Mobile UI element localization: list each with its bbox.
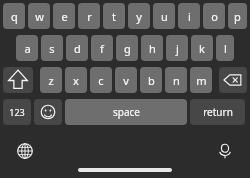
staticText: v <box>123 73 129 88</box>
staticText: d <box>74 41 81 56</box>
staticText: 123 <box>9 106 25 118</box>
staticText: l <box>224 41 227 56</box>
staticText: z <box>48 73 54 88</box>
staticText: i <box>188 9 191 24</box>
button[interactable]: return <box>190 99 245 125</box>
button[interactable]: q <box>3 3 25 29</box>
button[interactable]: v <box>115 67 137 93</box>
staticText: j <box>176 41 179 56</box>
staticText: b <box>148 73 155 88</box>
button[interactable]: space <box>65 99 187 125</box>
button[interactable]: j <box>166 35 188 61</box>
button[interactable]: f <box>91 35 113 61</box>
staticText: k <box>199 41 205 56</box>
button[interactable]: m <box>190 67 212 93</box>
staticText: n <box>173 73 180 88</box>
staticText: e <box>61 9 68 24</box>
button[interactable]: g <box>116 35 138 61</box>
button[interactable]: l <box>216 35 234 61</box>
staticText: r <box>87 9 92 24</box>
button[interactable]: Change keyboard <box>13 139 37 163</box>
staticText: w <box>35 9 44 24</box>
button[interactable]: z <box>40 67 62 93</box>
staticText: h <box>149 41 156 56</box>
staticText: g <box>124 41 131 56</box>
staticText: c <box>98 73 104 88</box>
staticText: m <box>196 73 207 88</box>
button[interactable]: e <box>53 3 75 29</box>
staticText: t <box>112 9 116 24</box>
button[interactable]: 123 <box>3 99 31 125</box>
button[interactable]: h <box>141 35 163 61</box>
button[interactable]: u <box>153 3 175 29</box>
button[interactable]: Emoji <box>34 99 62 125</box>
button[interactable]: o <box>203 3 225 29</box>
staticText: f <box>100 41 104 56</box>
button[interactable]: b <box>140 67 162 93</box>
staticText: p <box>234 9 241 24</box>
staticText: y <box>136 9 142 24</box>
staticText: q <box>11 9 18 24</box>
staticText: space <box>113 105 140 119</box>
staticText: u <box>161 9 168 24</box>
button[interactable]: c <box>90 67 112 93</box>
button[interactable]: d <box>66 35 88 61</box>
staticText: a <box>24 41 31 56</box>
button[interactable]: i <box>178 3 200 29</box>
button[interactable]: k <box>191 35 213 61</box>
staticText: s <box>49 41 55 56</box>
button[interactable]: r <box>78 3 100 29</box>
staticText: return <box>203 105 233 119</box>
button[interactable]: y <box>128 3 150 29</box>
button[interactable]: w <box>28 3 50 29</box>
button[interactable]: t <box>103 3 125 29</box>
button[interactable]: Dictation <box>213 139 237 163</box>
button[interactable]: x <box>65 67 87 93</box>
staticText: x <box>73 73 79 88</box>
staticText: o <box>211 9 218 24</box>
button[interactable]: n <box>165 67 187 93</box>
button[interactable]: Shift <box>3 67 33 93</box>
button[interactable]: s <box>41 35 63 61</box>
button[interactable]: Backspace <box>219 67 247 93</box>
button[interactable]: p <box>228 3 247 29</box>
button[interactable]: a <box>16 35 38 61</box>
